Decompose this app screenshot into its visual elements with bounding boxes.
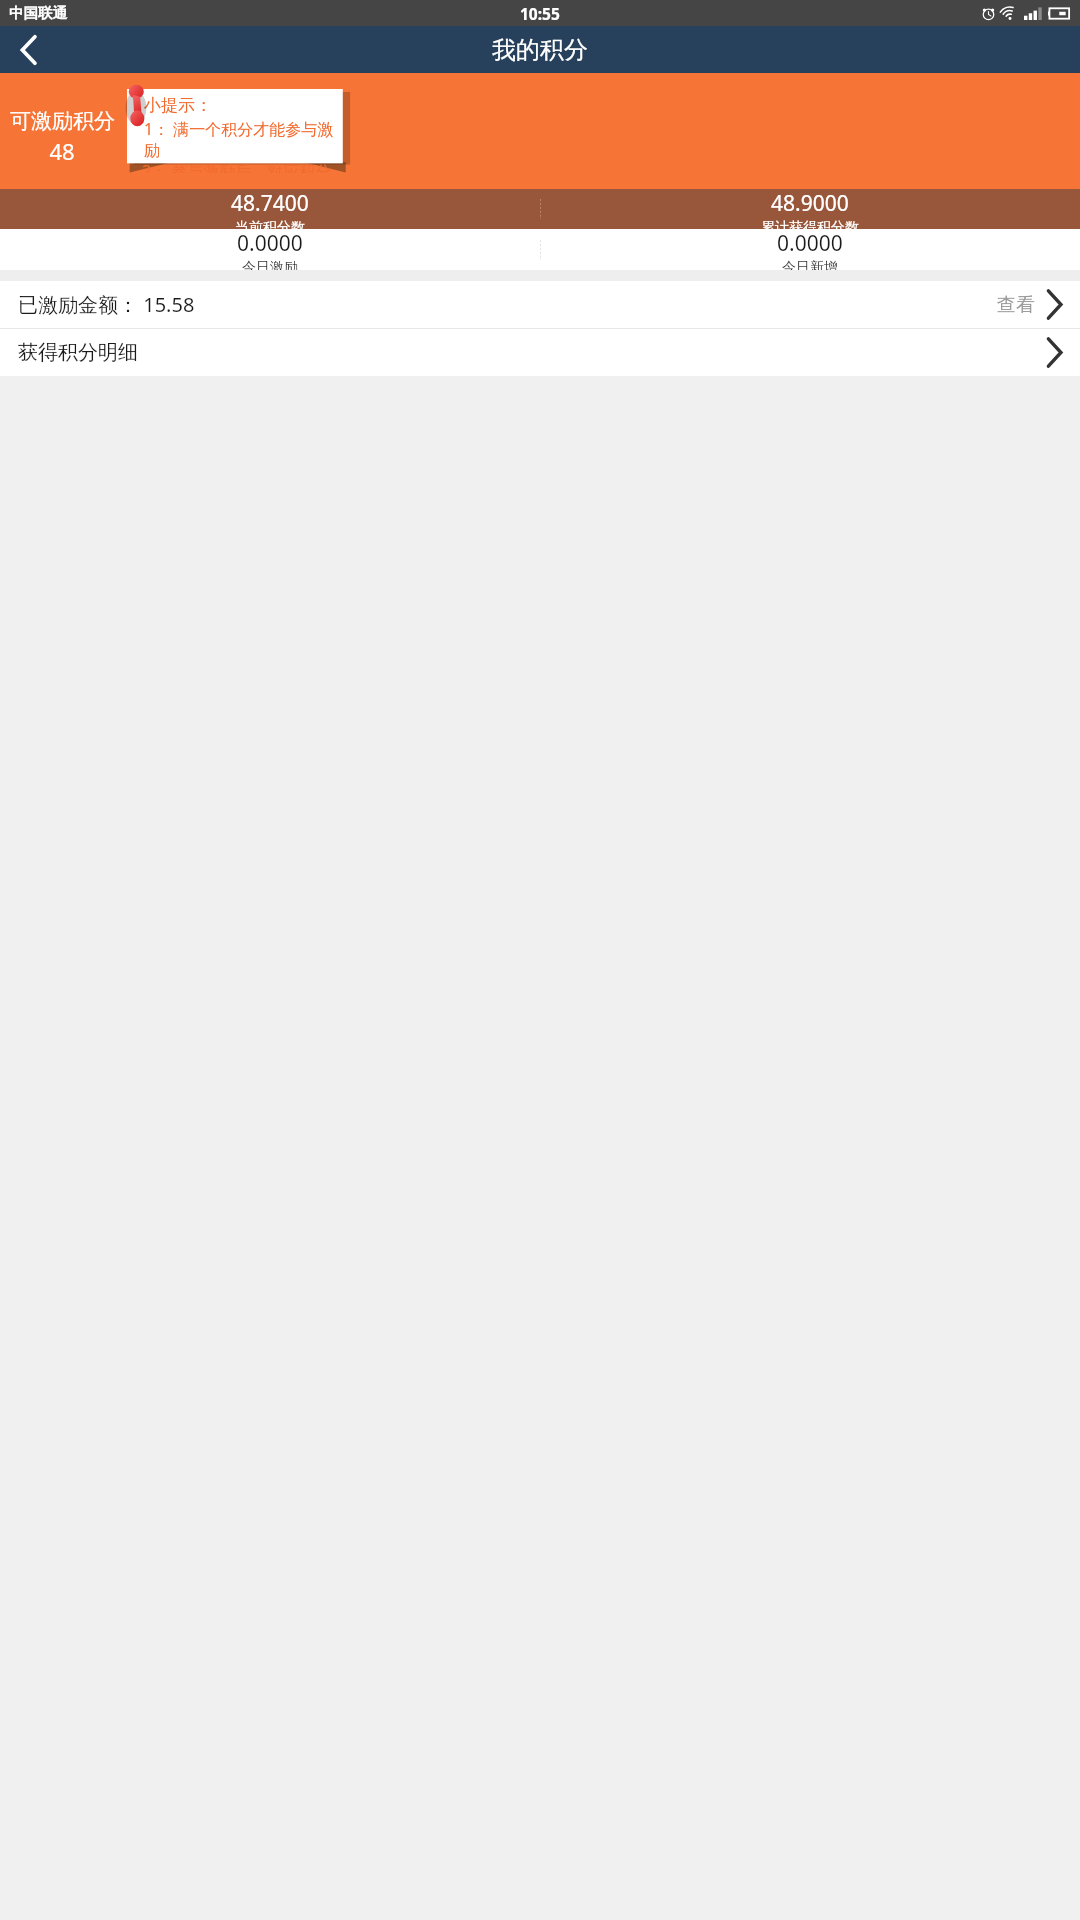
staticText: 今日新增 xyxy=(782,259,838,270)
staticText: 小提示： xyxy=(144,95,212,116)
staticText: 中国联通 xyxy=(9,4,67,22)
staticText: 0.0000 xyxy=(237,229,303,258)
button[interactable]: 已激励金额： 15.58 xyxy=(0,281,1080,328)
staticText: 48.9000 xyxy=(771,189,849,218)
button[interactable]: Back xyxy=(0,26,56,73)
button[interactable]: 获得积分明细 xyxy=(0,329,1080,376)
staticText: 48 xyxy=(49,136,75,166)
staticText: 可激励积分 xyxy=(10,108,115,134)
staticText: 10:55 xyxy=(520,3,560,24)
staticText: 今日激励 xyxy=(242,259,298,270)
staticText: 查看 xyxy=(997,293,1035,317)
staticText: 0.0000 xyxy=(777,229,843,258)
staticText: 我的积分 xyxy=(492,35,588,65)
staticText: 已激励金额： 15.58 xyxy=(18,291,997,318)
staticText: 2： 参与激励后，对应积分数量 xyxy=(142,160,338,173)
staticText: 获得积分明细 xyxy=(18,340,1046,365)
staticText: 48.7400 xyxy=(231,189,309,218)
staticText: 当前积分数 xyxy=(235,219,305,229)
staticText: 1： 满一个积分才能参与激励 xyxy=(144,118,340,160)
staticText: 累计获得积分数 xyxy=(761,219,859,229)
